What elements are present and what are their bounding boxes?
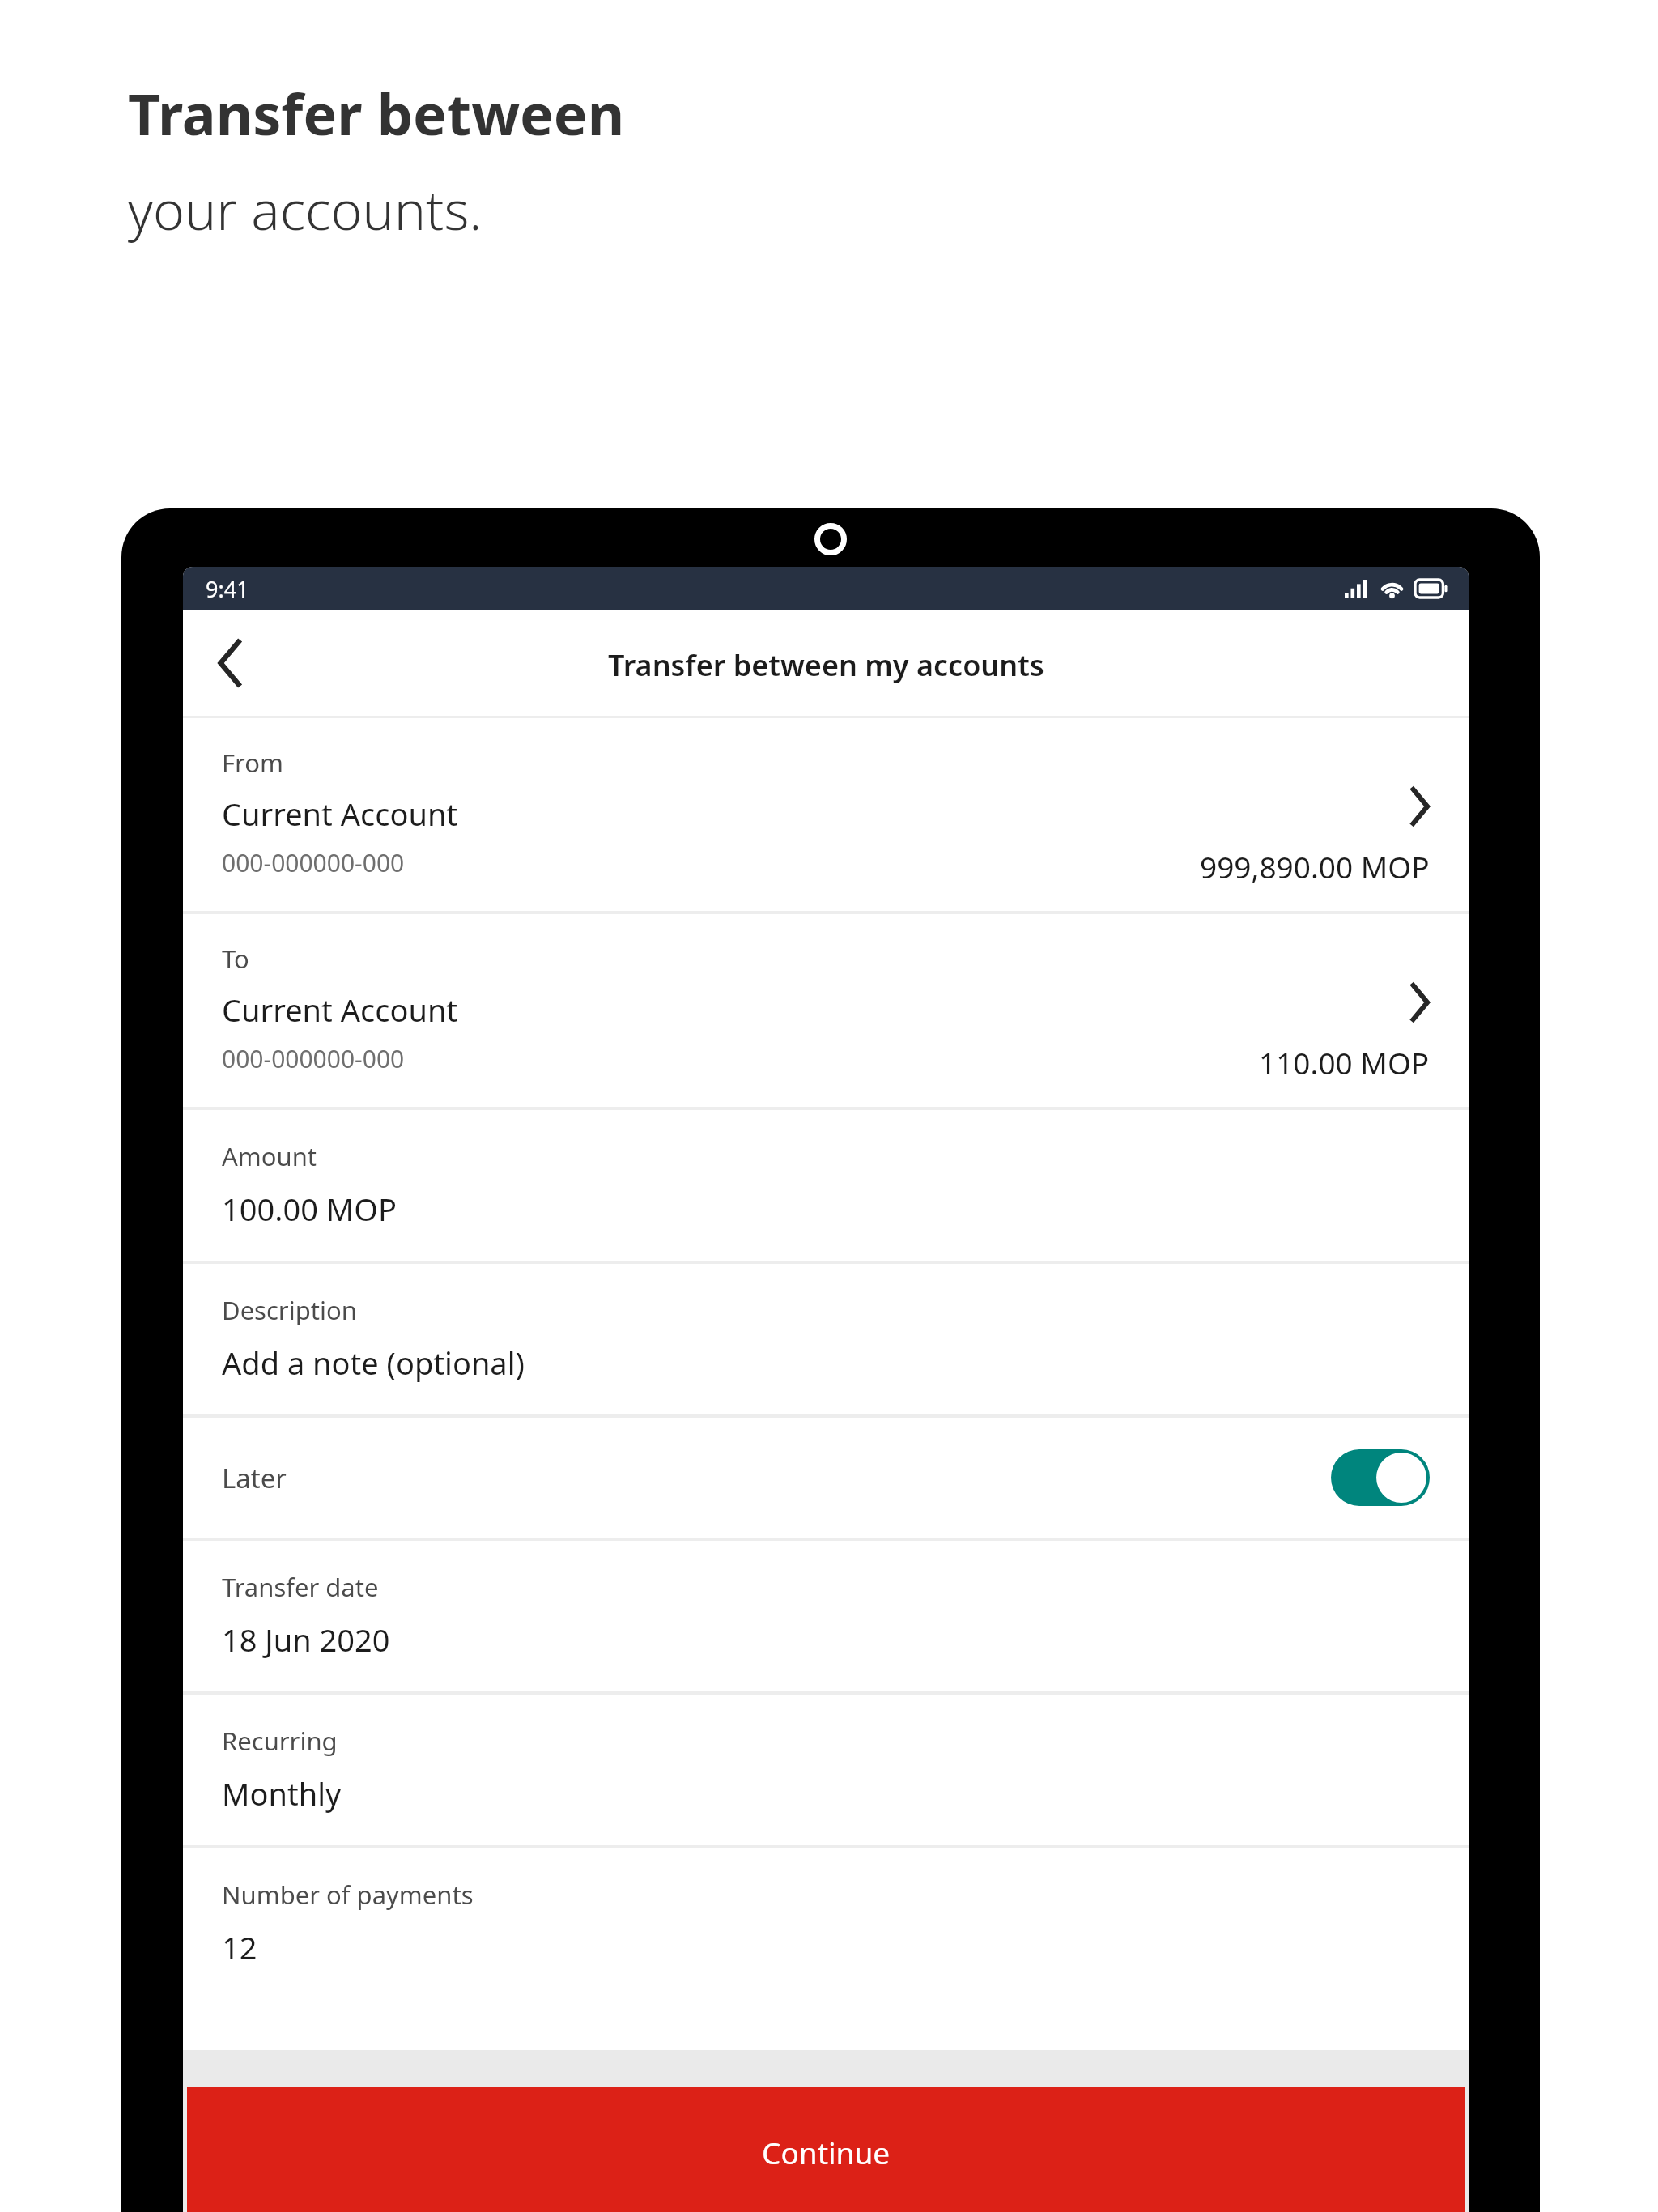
button[interactable]: Number of payments — [183, 1848, 1469, 1999]
staticText: 12 — [222, 1926, 257, 1968]
staticText: 110.00 MOP — [1259, 1042, 1430, 1083]
staticText: 100.00 MOP — [222, 1188, 397, 1230]
staticText: 9:41 — [206, 574, 249, 604]
staticText: Later — [222, 1460, 287, 1496]
staticText: Recurring — [222, 1724, 338, 1758]
button[interactable]: Later — [183, 1418, 1469, 1538]
staticText: To — [222, 942, 249, 976]
staticText: Current Account — [222, 793, 458, 835]
button[interactable]: Continue — [187, 2087, 1465, 2212]
staticText: 000-000000-000 — [222, 1042, 405, 1075]
staticText: your accounts. — [128, 172, 483, 245]
staticText: Transfer between my accounts — [608, 645, 1044, 685]
staticText: Current Account — [222, 989, 458, 1031]
button[interactable]: To — [183, 914, 1469, 1107]
button[interactable]: Recurring — [183, 1695, 1469, 1845]
staticText: Description — [222, 1293, 357, 1327]
staticText: From — [222, 746, 284, 780]
staticText: Transfer between — [128, 74, 625, 151]
staticText: Amount — [222, 1139, 317, 1173]
button[interactable]: Back — [199, 632, 261, 694]
button[interactable]: Amount — [183, 1110, 1469, 1261]
staticText: Add a note (optional) — [222, 1342, 525, 1384]
staticText: 18 Jun 2020 — [222, 1619, 390, 1661]
staticText: Number of payments — [222, 1878, 474, 1912]
staticText: 999,890.00 MOP — [1200, 846, 1430, 887]
button[interactable]: From — [183, 718, 1469, 911]
staticText: Transfer date — [222, 1570, 379, 1604]
button[interactable]: Transfer date — [183, 1541, 1469, 1691]
staticText: Monthly — [222, 1772, 342, 1814]
button[interactable]: Description — [183, 1264, 1469, 1414]
staticText: Continue — [762, 2132, 891, 2172]
staticText: 000-000000-000 — [222, 846, 405, 879]
